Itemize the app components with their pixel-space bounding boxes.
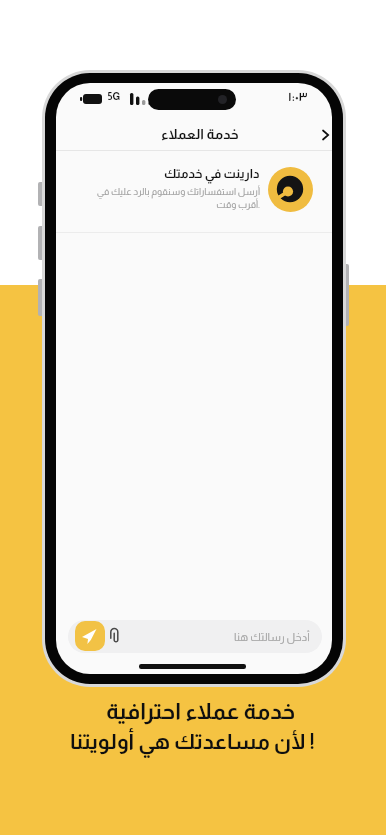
button[interactable]: خدمة العملاء [62,123,332,145]
button[interactable] [321,129,330,141]
staticText: أرسل استفساراتك وسنقوم بالرد عليك في أقر… [88,186,260,210]
button[interactable] [75,621,105,651]
staticText: خدمة العملاء [161,126,239,142]
staticText: 5G [108,91,121,102]
staticText: أدخل رسالتك هنا [234,631,310,643]
staticText: دارينت في خدمتك [164,167,260,181]
staticText: لأن مساعدتك هي أولويتنا ! [70,730,316,754]
staticText: ١:٠٣ [288,90,308,103]
button[interactable]: أدخل رسالتك هنا [68,620,322,653]
staticText: خدمة عملاء احترافية [106,699,296,724]
